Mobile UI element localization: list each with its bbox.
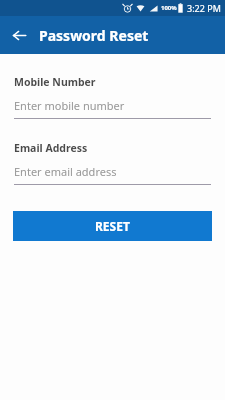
staticText: 100% bbox=[161, 4, 177, 12]
button[interactable]: Back bbox=[6, 22, 32, 48]
staticText: Enter mobile number bbox=[14, 98, 125, 113]
button[interactable]: RESET bbox=[13, 211, 212, 241]
staticText: Mobile Number bbox=[14, 75, 96, 89]
staticText: Password Reset bbox=[39, 26, 149, 45]
button[interactable]: Mobile Number bbox=[0, 75, 225, 119]
staticText: Email Address bbox=[14, 141, 88, 155]
staticText: Enter email address bbox=[14, 164, 117, 179]
button[interactable]: Email Address bbox=[0, 141, 225, 185]
staticText: RESET bbox=[95, 218, 130, 234]
staticText: 3:22 PM bbox=[187, 2, 221, 14]
